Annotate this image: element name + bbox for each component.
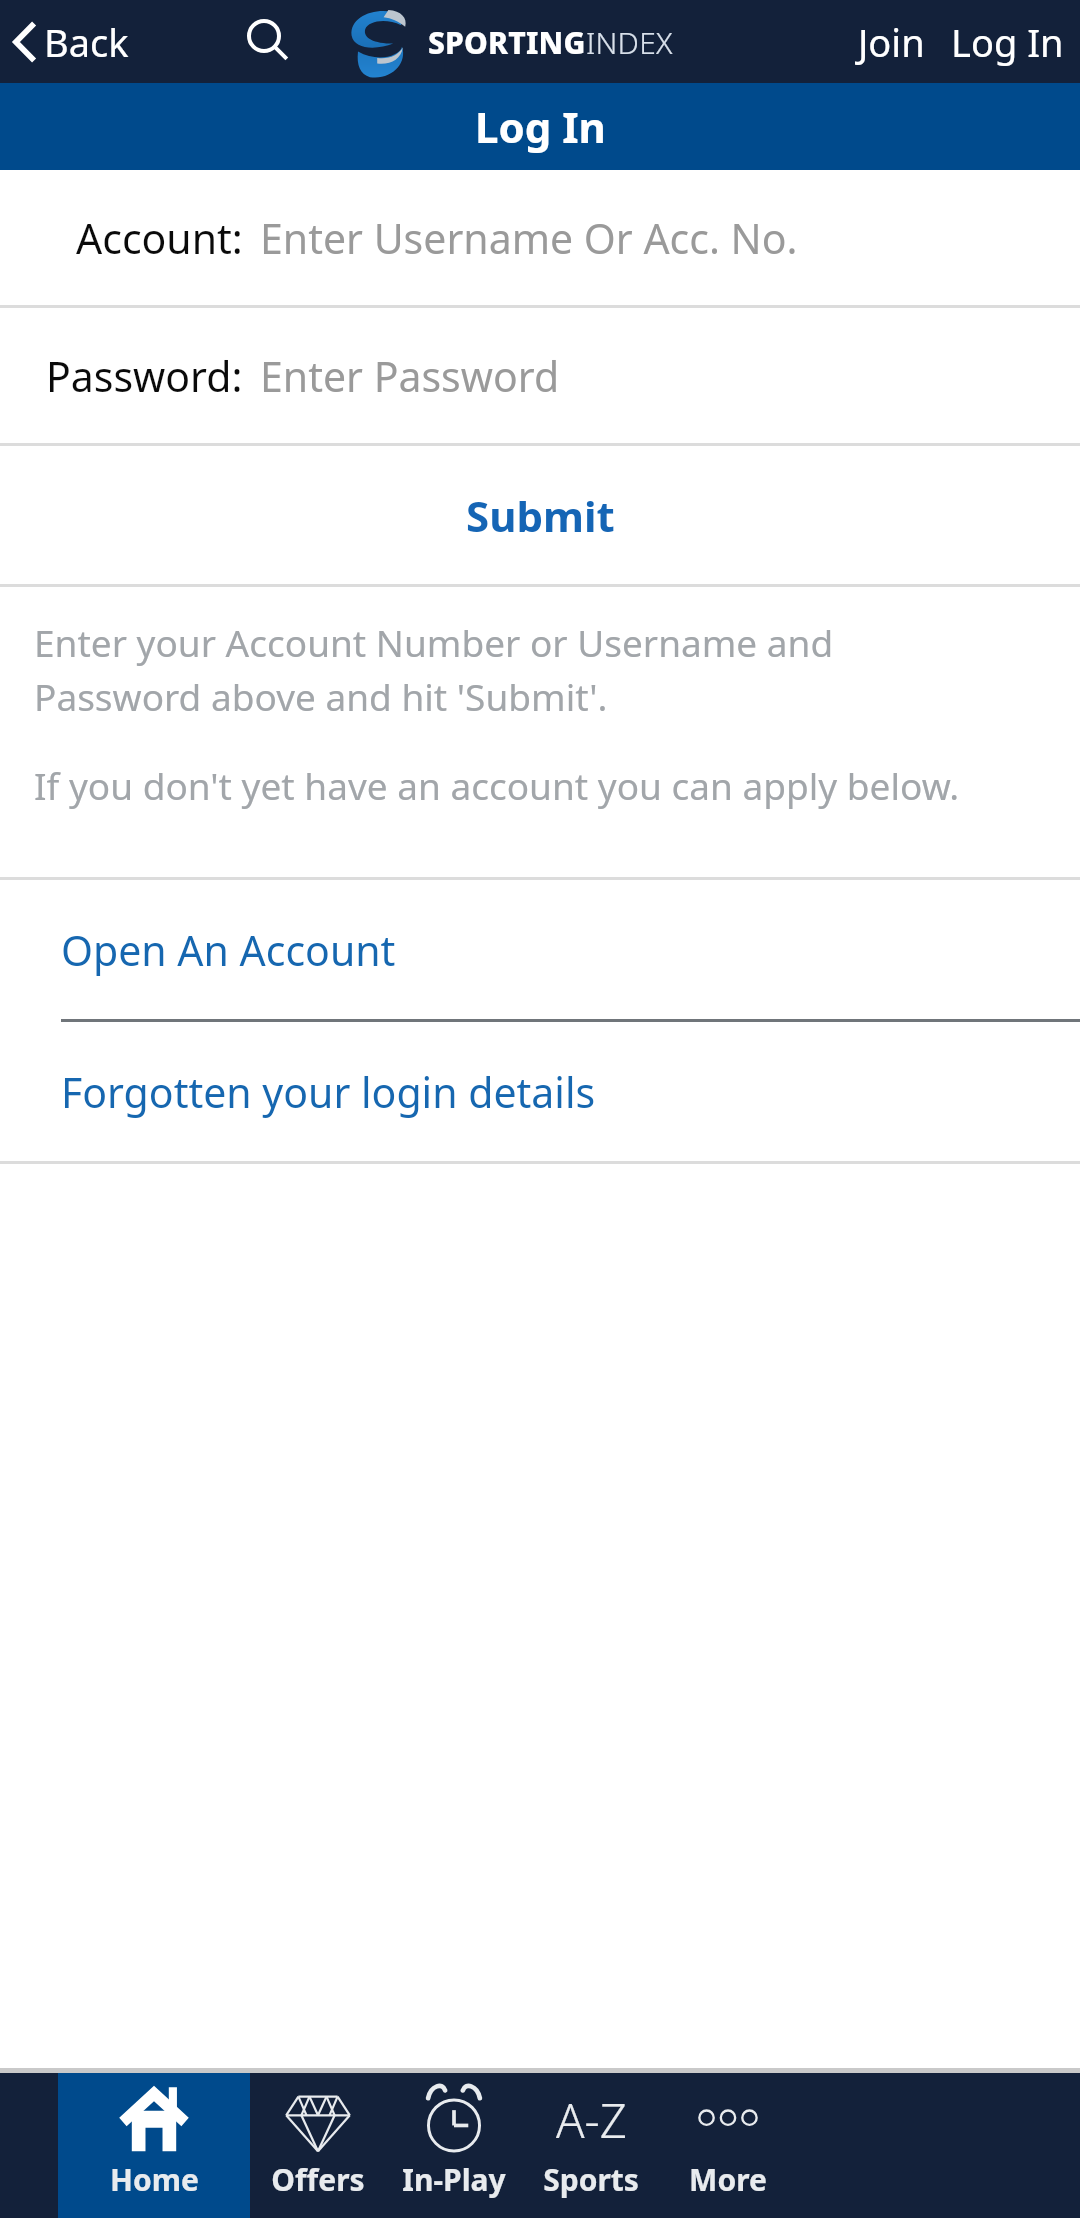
button[interactable]: In-Play	[385, 2073, 522, 2218]
staticText: Join	[858, 16, 925, 68]
button[interactable]: More	[659, 2073, 796, 2218]
button[interactable]: Offers	[250, 2073, 385, 2218]
button[interactable]: Join	[844, 0, 939, 83]
staticText: Open An Account	[61, 922, 396, 978]
button[interactable]: Log In	[939, 0, 1080, 83]
button[interactable]: Submit	[0, 446, 1080, 584]
staticText: Log In	[475, 98, 606, 155]
button[interactable]: Account:	[0, 170, 1080, 305]
staticText: Enter Username Or Acc. No.	[260, 210, 798, 266]
staticText: INDEX	[586, 22, 673, 63]
button[interactable]: A-Z	[522, 2073, 659, 2218]
staticText: Back	[44, 16, 129, 68]
button[interactable]: Home	[58, 2073, 250, 2218]
button[interactable]: Search	[232, 0, 304, 83]
staticText: Submit	[466, 487, 615, 544]
staticText: In-Play	[402, 2159, 506, 2200]
staticText: SPORTING	[428, 22, 586, 63]
button[interactable]: Open An Account	[0, 880, 1080, 1019]
staticText: Sports	[543, 2159, 639, 2200]
staticText: Home	[110, 2159, 199, 2200]
staticText: If you don't yet have an account you can…	[34, 760, 960, 810]
staticText: Password:	[46, 348, 243, 404]
button[interactable]: Back	[0, 0, 141, 83]
staticText: Forgotten your login details	[61, 1064, 596, 1120]
staticText: More	[689, 2159, 767, 2200]
staticText: Log In	[951, 16, 1064, 68]
staticText: A-Z	[556, 2088, 627, 2152]
button[interactable]: Forgotten your login details	[0, 1022, 1080, 1161]
staticText: Enter Password	[260, 348, 560, 404]
button[interactable]: Password:	[0, 308, 1080, 443]
staticText: Offers	[271, 2159, 365, 2200]
staticText: Enter your Account Number or Username an…	[34, 617, 834, 722]
staticText: Account:	[76, 210, 243, 266]
